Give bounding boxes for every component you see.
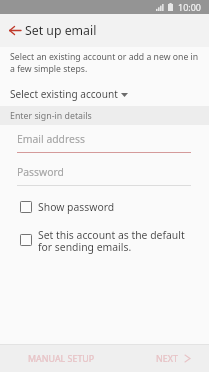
button[interactable]: Show password [0, 201, 209, 215]
staticText: Show password [38, 200, 190, 214]
staticText: Set this account as the default for send… [38, 228, 190, 254]
staticText: NEXT [156, 352, 178, 364]
button[interactable]: NEXT [146, 345, 209, 372]
button[interactable]: Email address [0, 126, 209, 152]
staticText: Email address [17, 132, 85, 146]
staticText: 10:00 [178, 1, 202, 13]
staticText: Set up email [25, 22, 97, 39]
button[interactable]: Set this account as the default for send… [0, 234, 209, 260]
staticText: Select an existing account or add a new … [10, 51, 200, 75]
staticText: Select existing account [10, 87, 118, 101]
staticText: MANUAL SETUP [28, 352, 95, 364]
staticText: Password [17, 165, 64, 179]
button[interactable]: Select existing account [0, 86, 138, 102]
button[interactable]: Password [0, 159, 209, 185]
button[interactable]: MANUAL SETUP [0, 345, 109, 372]
staticText: Enter sign-in details [10, 110, 92, 122]
button[interactable]: Back [0, 14, 27, 47]
